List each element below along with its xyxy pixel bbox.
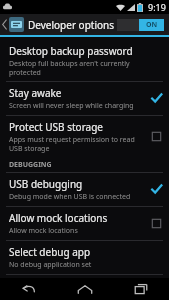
staticText: Protect USB storage <box>9 120 103 134</box>
button[interactable]: Desktop backup password <box>0 40 169 81</box>
staticText: Stay awake <box>9 86 62 100</box>
staticText: Desktop full backups aren't currently pr… <box>9 59 162 77</box>
staticText: No debug application set <box>9 260 92 270</box>
button[interactable]: Recent apps <box>113 278 169 300</box>
staticText: USB debugging <box>9 177 83 191</box>
button[interactable]: Select debug app <box>0 241 169 274</box>
staticText: Developer options <box>28 18 115 32</box>
button[interactable]: Stay awake <box>0 82 169 115</box>
button[interactable]: Navigate up <box>0 17 117 32</box>
button[interactable]: Back <box>0 278 57 300</box>
button[interactable]: Developer options on <box>117 19 164 31</box>
staticText: Debug mode when USB is connected <box>9 192 131 202</box>
staticText: Screen will never sleep while charging <box>9 101 134 111</box>
button[interactable]: Allow mock locations <box>0 207 169 240</box>
button[interactable]: USB debugging <box>0 173 169 206</box>
button[interactable]: Home <box>57 278 113 300</box>
staticText: ON <box>146 20 158 30</box>
other: Navigate up <box>2 20 7 29</box>
staticText: DEBUGGING <box>9 160 52 170</box>
button[interactable]: Protect USB storage <box>0 116 169 157</box>
staticText: Allow mock locations <box>9 226 78 236</box>
staticText: Allow mock locations <box>9 211 108 225</box>
staticText: Apps must request permission to read USB… <box>9 135 145 153</box>
staticText: Select debug app <box>9 245 91 259</box>
staticText: 9:19 <box>148 1 166 13</box>
staticText: Desktop backup password <box>9 44 133 58</box>
